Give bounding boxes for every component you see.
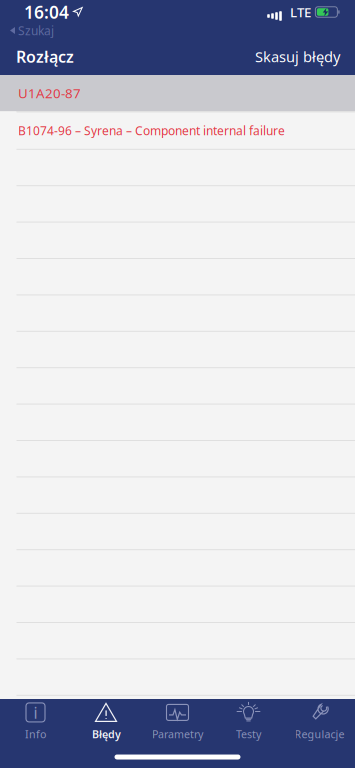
button[interactable]: B1074-96 – Syrena – Component internal f…	[0, 112, 355, 149]
button[interactable]: U1A20-87	[0, 75, 355, 111]
staticText: Parametry	[152, 727, 203, 741]
staticText: B1074-96 – Syrena – Component internal f…	[18, 123, 285, 138]
button[interactable]: Skasuj błędy	[243, 38, 355, 75]
button[interactable]: Błędy	[71, 698, 142, 746]
staticText: Szukaj	[18, 22, 54, 38]
staticText: Rozłącz	[16, 46, 74, 67]
staticText: Regulacje	[294, 727, 344, 741]
staticText: U1A20-87	[18, 84, 81, 102]
staticText: Błędy	[92, 727, 121, 741]
button[interactable]: i	[0, 698, 71, 746]
staticText: LTE	[290, 3, 311, 21]
staticText: Skasuj błędy	[255, 47, 340, 66]
staticText: 16:04	[24, 0, 69, 23]
button[interactable]: Rozłącz	[0, 38, 86, 75]
staticText: Testy	[236, 727, 261, 741]
button[interactable]: Testy	[213, 698, 284, 746]
button[interactable]: Regulacje	[284, 698, 355, 746]
staticText: i	[33, 702, 37, 723]
button[interactable]: Parametry	[142, 698, 213, 746]
staticText: Info	[25, 727, 46, 741]
